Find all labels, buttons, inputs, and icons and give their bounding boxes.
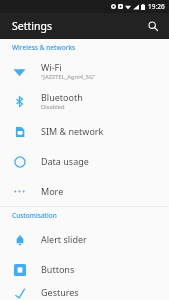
staticText: Gestures (41, 286, 79, 298)
staticText: SIM & network (41, 125, 104, 137)
button[interactable]: Wi-Fi (0, 56, 169, 86)
staticText: Customisation (12, 211, 57, 220)
staticText: Data usage (41, 155, 89, 167)
staticText: Disabled (41, 103, 65, 111)
staticText: 19:26 (148, 2, 165, 11)
button[interactable]: More (0, 176, 169, 206)
staticText: Bluetooth (41, 91, 83, 103)
staticText: Settings (12, 19, 52, 33)
staticText: Wireless & networks (12, 43, 76, 52)
button[interactable]: SIM & network (0, 116, 169, 146)
staticText: Buttons (41, 263, 75, 275)
button[interactable]: Data usage (0, 146, 169, 176)
staticText: "JAZZTEL_Agni4_5G" (41, 73, 96, 81)
staticText: More (41, 185, 64, 197)
button[interactable]: Alert slider (0, 224, 169, 254)
button[interactable]: Gestures (0, 284, 169, 300)
staticText: Wi-Fi (41, 61, 62, 73)
button[interactable]: Bluetooth (0, 86, 169, 116)
button[interactable]: Buttons (0, 254, 169, 284)
button[interactable]: Search (144, 17, 162, 35)
staticText: Alert slider (41, 233, 87, 245)
